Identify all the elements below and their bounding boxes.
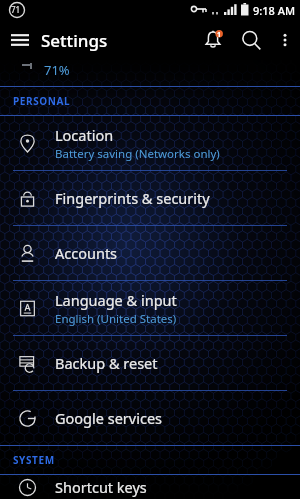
staticText: Fingerprints & security [55, 188, 210, 208]
button[interactable]: Notifications [194, 21, 232, 59]
staticText: SYSTEM [13, 453, 55, 467]
button[interactable]: Backup & reset [0, 336, 300, 390]
button[interactable]: Search [232, 21, 270, 59]
staticText: English (United States) [55, 311, 177, 327]
staticText: Backup & reset [55, 353, 158, 373]
staticText: 9:18 AM [253, 3, 296, 18]
staticText: 71 [11, 4, 21, 15]
button[interactable]: Fingerprints & security [0, 171, 300, 225]
button[interactable]: More options [270, 25, 300, 55]
button[interactable]: Google services [0, 391, 300, 445]
staticText: 71% [44, 61, 70, 79]
staticText: Accounts [55, 243, 118, 263]
button[interactable]: Language & input [0, 281, 300, 335]
staticText: 1 [217, 30, 222, 40]
staticText: Google services [55, 408, 163, 428]
staticText: PERSONAL [13, 94, 71, 108]
staticText: Shortcut keys [55, 477, 147, 497]
button[interactable]: Shortcut keys [0, 475, 300, 499]
button[interactable]: Open navigation drawer [0, 20, 40, 60]
staticText: Language & input [55, 290, 177, 310]
staticText: Settings [41, 29, 108, 52]
button[interactable]: Location [0, 116, 300, 170]
staticText: Location [55, 125, 114, 145]
button[interactable]: Accounts [0, 226, 300, 280]
staticText: Battery saving (Networks only) [55, 146, 220, 162]
